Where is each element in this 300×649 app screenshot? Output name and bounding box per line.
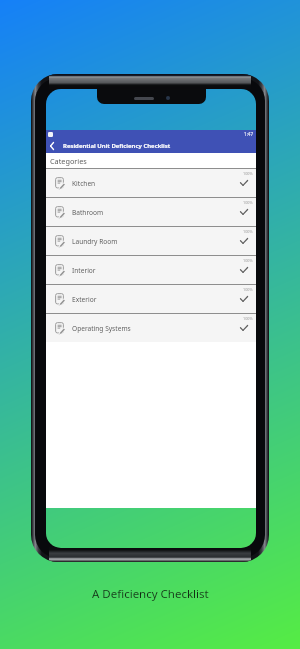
staticText: Bathroom (72, 208, 104, 217)
button[interactable]: Bathroom (46, 198, 256, 226)
staticText: 100% (243, 171, 253, 176)
staticText: 100% (243, 287, 253, 292)
staticText: Operating Systems (72, 324, 131, 333)
button[interactable]: Operating Systems (46, 314, 256, 342)
staticText: Kitchen (72, 179, 96, 188)
staticText: Interior (72, 266, 96, 275)
staticText: Categories (50, 156, 87, 166)
button[interactable]: Kitchen (46, 169, 256, 197)
staticText: Exterior (72, 295, 97, 304)
staticText: A Deficiency Checklist (92, 586, 209, 602)
staticText: 1:47 (244, 131, 254, 137)
staticText: 100% (243, 258, 253, 263)
staticText: 100% (243, 200, 253, 205)
button[interactable]: Interior (46, 256, 256, 284)
staticText: 100% (243, 229, 253, 234)
button[interactable]: Laundry Room (46, 227, 256, 255)
staticText: Residential Unit Deficiency Checklist (63, 142, 171, 150)
button[interactable]: Exterior (46, 285, 256, 313)
staticText: Laundry Room (72, 237, 118, 246)
staticText: 100% (243, 316, 253, 321)
button[interactable]: Back (46, 138, 57, 153)
